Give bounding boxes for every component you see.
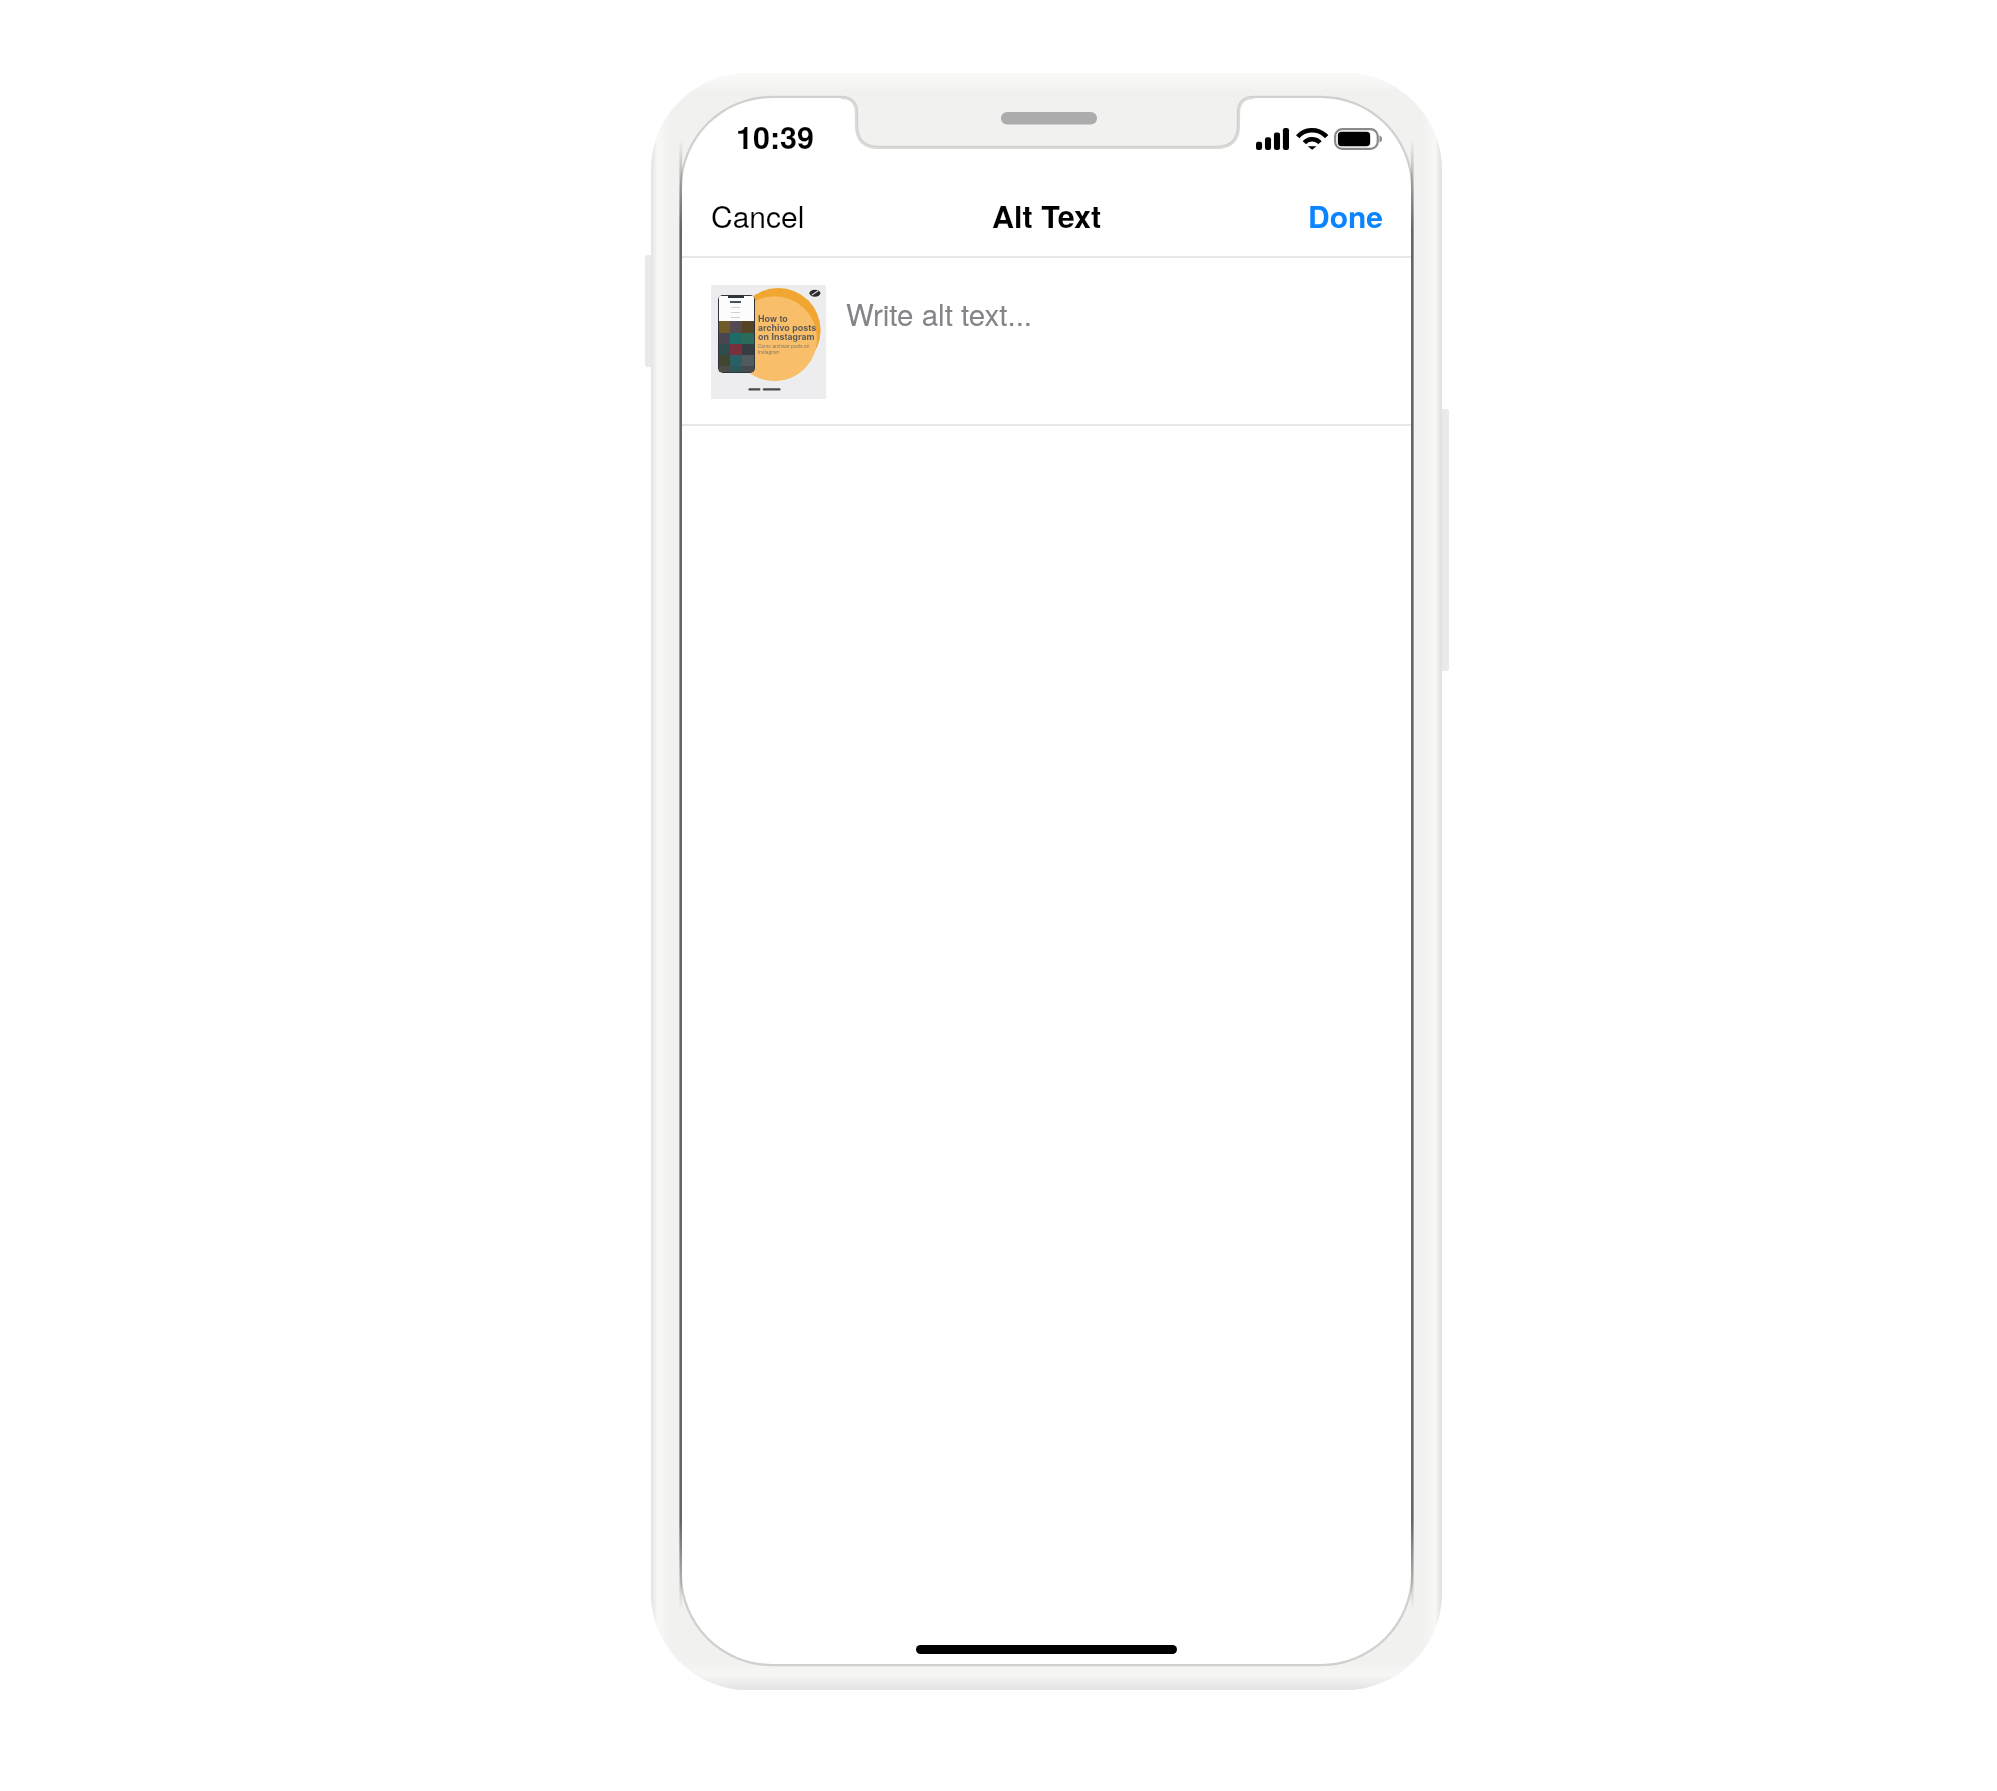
button[interactable]: How to archivo posts on Instagram bbox=[682, 258, 1411, 424]
staticText: Como archivar posts en Instagram bbox=[758, 342, 810, 356]
staticText: 10:39 bbox=[736, 115, 814, 159]
staticText: Cancel bbox=[711, 194, 805, 237]
staticText: Done bbox=[1308, 194, 1383, 237]
staticText: How to archivo posts on Instagram bbox=[758, 312, 817, 343]
staticText: Alt Text bbox=[992, 194, 1102, 238]
other: Wi-Fi bbox=[1297, 127, 1327, 150]
button[interactable]: Done bbox=[1280, 184, 1411, 254]
button[interactable]: Cancel bbox=[682, 184, 834, 254]
other: Cellular signal bbox=[1256, 128, 1289, 150]
other: Battery bbox=[1334, 128, 1383, 150]
staticText: Write alt text... bbox=[846, 292, 1033, 334]
